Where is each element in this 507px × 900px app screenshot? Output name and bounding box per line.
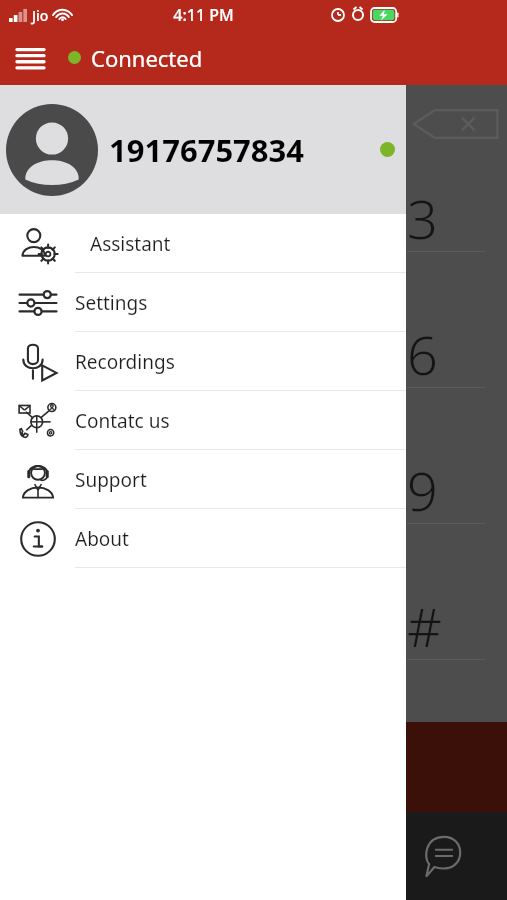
button[interactable]: Assistant <box>0 214 406 273</box>
button[interactable]: Settings <box>0 273 406 332</box>
staticText: Settings <box>75 290 148 316</box>
button[interactable]: Backspace <box>412 103 500 145</box>
staticText: Jio <box>32 6 49 25</box>
button[interactable]: About <box>0 509 406 568</box>
button[interactable]: Contatc us <box>0 391 406 450</box>
staticText: 4:11 PM <box>173 4 234 26</box>
staticText: Connected <box>91 43 203 73</box>
staticText: Recordings <box>75 349 175 375</box>
button[interactable]: 19176757834 <box>0 85 406 214</box>
button[interactable]: Open navigation menu <box>8 36 52 80</box>
staticText: 9 <box>407 453 438 527</box>
staticText: 19176757834 <box>109 129 305 171</box>
button[interactable]: Messages <box>420 832 468 880</box>
button[interactable]: 6 <box>405 313 507 449</box>
button[interactable]: Recordings <box>0 332 406 391</box>
button[interactable]: # <box>405 585 507 721</box>
staticText: Contatc us <box>75 408 170 434</box>
staticText: Assistant <box>90 231 171 257</box>
staticText: # <box>407 589 442 663</box>
staticText: Support <box>75 467 147 493</box>
button[interactable]: 9 <box>405 449 507 585</box>
button[interactable]: Support <box>0 450 406 509</box>
staticText: 3 <box>407 181 438 255</box>
staticText: 6 <box>407 317 438 391</box>
button[interactable]: 3 <box>405 177 507 313</box>
staticText: About <box>75 526 129 552</box>
